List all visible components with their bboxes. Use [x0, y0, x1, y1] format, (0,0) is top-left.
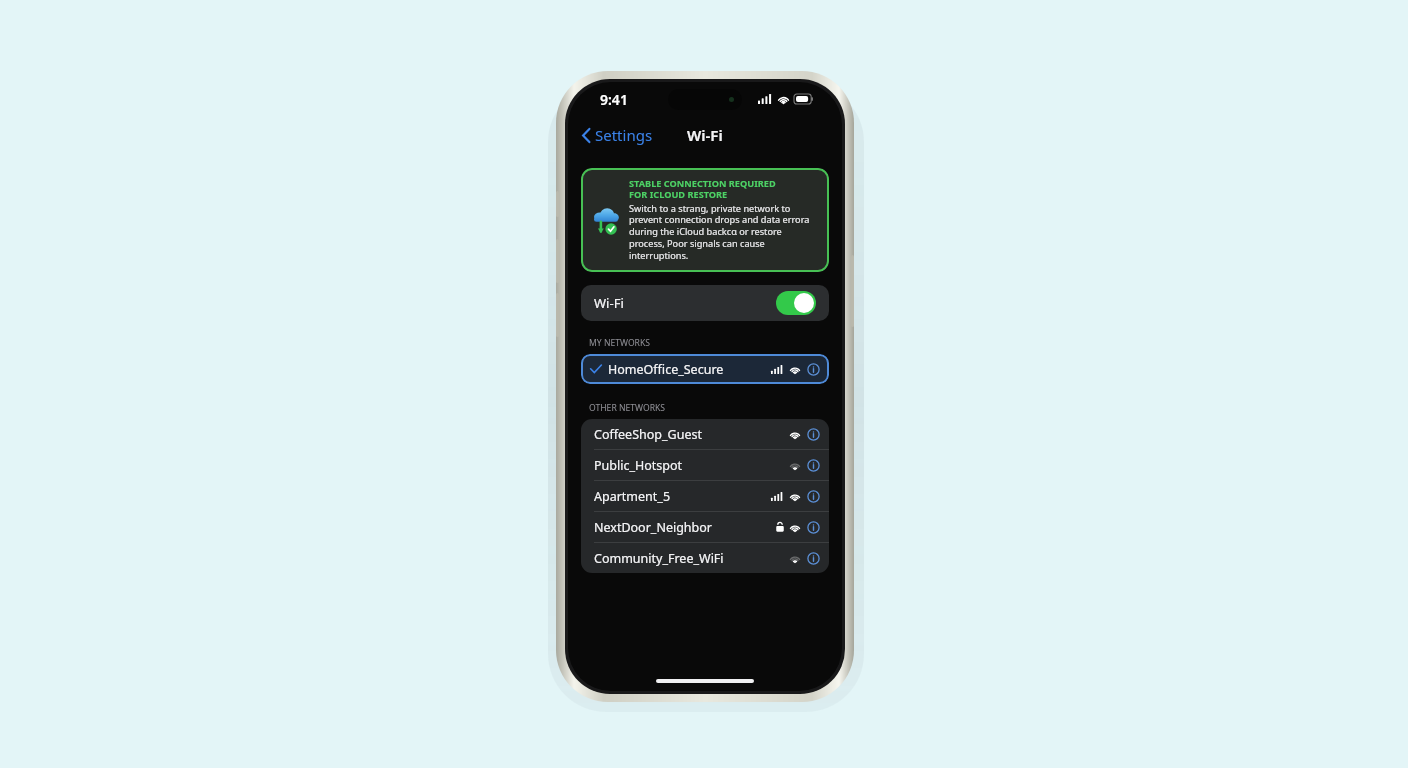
staticText: NextDoor_Neighbor [594, 519, 712, 536]
staticText: Switch to a strang, private network to p… [629, 202, 818, 262]
button[interactable]: NextDoor_Neighbor [581, 512, 829, 542]
button[interactable]: Network information [807, 490, 820, 503]
other: Wi-Fi on [776, 291, 816, 315]
button[interactable]: Public_Hotspot [581, 450, 829, 480]
staticText: Settings [595, 125, 653, 145]
staticText: STABLE CONNECTION REQUIRED FOR ICLOUD RE… [629, 177, 776, 201]
staticText: Public_Hotspot [594, 457, 683, 474]
staticText: CoffeeShop_Guest [594, 426, 702, 443]
button[interactable]: STABLE CONNECTION REQUIRED FOR ICLOUD RE… [581, 168, 829, 272]
button[interactable]: Community_Free_WiFi [581, 543, 829, 573]
staticText: Community_Free_WiFi [594, 550, 724, 567]
button[interactable]: Wi-Fi [581, 285, 829, 321]
staticText: Wi-Fi [594, 294, 624, 312]
button[interactable]: Network information [807, 552, 820, 565]
staticText: Apartment_5 [594, 488, 671, 505]
staticText: OTHER NETWORKS [589, 402, 666, 414]
button[interactable]: Network information [807, 459, 820, 472]
staticText: MY NETWORKS [589, 337, 650, 349]
button[interactable]: CoffeeShop_Guest [581, 419, 829, 449]
staticText: HomeOffice_Secure [608, 361, 724, 378]
button[interactable]: Network information [807, 428, 820, 441]
button[interactable]: Apartment_5 [581, 481, 829, 511]
staticText: 9:41 [600, 90, 628, 109]
button[interactable]: Settings [578, 122, 657, 148]
button[interactable]: Network information [807, 363, 820, 376]
button[interactable]: HomeOffice_Secure [581, 354, 829, 384]
button[interactable]: Network information [807, 521, 820, 534]
staticText: Wi-Fi [687, 125, 723, 145]
